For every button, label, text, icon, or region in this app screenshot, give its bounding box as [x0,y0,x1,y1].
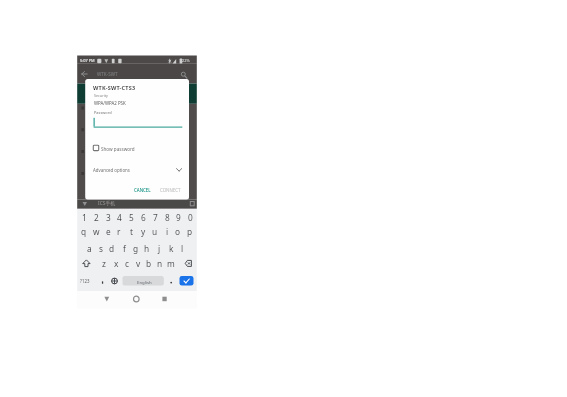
button[interactable]: d [106,241,118,256]
staticText: b [146,258,152,269]
staticText: r [117,226,121,237]
button[interactable]: a [83,241,95,256]
button[interactable]: p [184,224,196,239]
staticText: q [81,226,87,237]
button[interactable]: u [149,224,161,239]
staticText: WTK-SWT-CTS3 [93,84,136,91]
button[interactable]: 4 [113,210,125,225]
button[interactable]: q [78,224,90,239]
button[interactable]: l [176,241,188,256]
button[interactable]: y [137,224,149,239]
staticText: g [133,243,139,254]
button[interactable]: n [154,256,166,271]
button[interactable]: x [110,256,122,271]
button[interactable]: CONNECT [159,186,182,194]
staticText: 6 [141,212,146,223]
staticText: i [166,226,169,237]
staticText: ?123 [80,278,90,284]
staticText: 0 [188,212,193,223]
staticText: f [123,243,126,254]
button[interactable]: English [136,278,152,285]
button[interactable]: Advanced options [93,165,185,174]
staticText: p [187,226,193,237]
staticText: n [157,258,163,269]
button[interactable]: 0 [184,210,196,225]
button[interactable]: g [130,241,142,256]
staticText: e [106,226,111,237]
button[interactable]: k [165,241,177,256]
button[interactable]: i [161,224,173,239]
staticText: CANCEL [134,187,151,193]
staticText: o [175,226,181,237]
button[interactable]: o [172,224,184,239]
staticText: y [141,226,146,237]
staticText: t [130,226,133,237]
button[interactable]: m [165,256,177,271]
staticText: v [136,258,141,269]
staticText: m [167,258,175,269]
staticText: Security [94,93,108,98]
staticText: x [114,258,119,269]
button[interactable]: r [113,224,125,239]
button[interactable]: CANCEL [132,186,153,194]
staticText: 5:07 PM [80,58,95,63]
staticText: l [181,243,184,254]
staticText: h [144,243,150,254]
staticText: ICS手机 [98,200,116,207]
button[interactable]: w [90,224,102,239]
staticText: k [169,243,174,254]
button[interactable]: c [121,256,133,271]
staticText: Password [94,110,112,115]
button[interactable]: z [98,256,110,271]
button[interactable]: 3 [102,210,114,225]
staticText: 5 [129,212,134,223]
staticText: 8 [165,212,170,223]
button[interactable]: Show password [101,145,141,153]
staticText: 2 [94,212,99,223]
button[interactable]: 7 [149,210,161,225]
staticText: 1 [82,212,87,223]
staticText: WPA/WPA2 PSK [94,100,126,106]
staticText: 9 [176,212,181,223]
staticText: s [99,243,103,254]
staticText: Advanced options [93,167,130,173]
staticText: CONNECT [160,187,181,193]
staticText: w [93,226,100,237]
staticText: c [125,258,129,269]
button[interactable]: 1 [78,210,90,225]
button[interactable]: 8 [161,210,173,225]
staticText: WTK-SWT [97,71,118,77]
button[interactable]: e [102,224,114,239]
button[interactable]: 5 [125,210,137,225]
button[interactable]: v [132,256,144,271]
button[interactable]: b [143,256,155,271]
staticText: z [102,258,106,269]
staticText: j [158,243,161,254]
staticText: a [87,243,92,254]
button[interactable]: 9 [172,210,184,225]
staticText: u [152,226,158,237]
button[interactable]: s [95,241,107,256]
button[interactable]: f [118,241,130,256]
button[interactable]: 2 [90,210,102,225]
staticText: 3 [106,212,111,223]
staticText: English [137,279,152,285]
button[interactable]: 6 [137,210,149,225]
button[interactable]: h [141,241,153,256]
button[interactable]: j [153,241,165,256]
staticText: 22% [182,58,190,63]
staticText: 7 [153,212,158,223]
staticText: d [109,243,115,254]
staticText: Show password [101,146,135,152]
staticText: 4 [117,212,122,223]
button[interactable]: t [125,224,137,239]
